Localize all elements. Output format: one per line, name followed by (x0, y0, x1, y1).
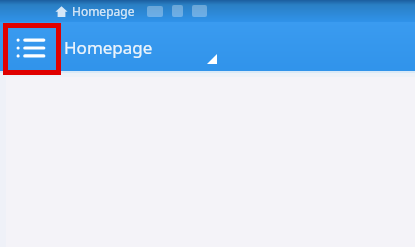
staticText: Homepage (64, 36, 153, 59)
button[interactable]: Account (172, 5, 183, 17)
button[interactable]: Homepage (53, 3, 137, 19)
button[interactable]: Open navigation menu (6, 25, 56, 70)
button[interactable]: Window (192, 5, 207, 17)
button[interactable]: Messages (147, 6, 163, 17)
staticText: Homepage (72, 3, 135, 19)
